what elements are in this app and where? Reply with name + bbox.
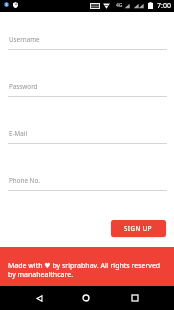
button[interactable]: Password [8, 78, 167, 97]
staticText: Password [9, 82, 38, 91]
button[interactable]: Username [8, 31, 167, 50]
staticText: 7:00 [157, 1, 171, 11]
button[interactable]: Home [74, 286, 98, 310]
staticText: SIGN UP [124, 224, 152, 232]
staticText: Made with ♥ by sriprabhav. All rights re… [8, 261, 164, 279]
button[interactable]: Phone No. [8, 172, 167, 191]
button[interactable]: Back [27, 286, 51, 310]
button[interactable]: Recents [123, 286, 147, 310]
staticText: Phone No. [9, 176, 40, 185]
staticText: E-Mail [9, 129, 28, 138]
button[interactable]: SIGN UP [111, 220, 166, 237]
staticText: 4G [116, 2, 123, 9]
button[interactable]: E-Mail [8, 125, 167, 144]
staticText: Username [9, 35, 40, 44]
